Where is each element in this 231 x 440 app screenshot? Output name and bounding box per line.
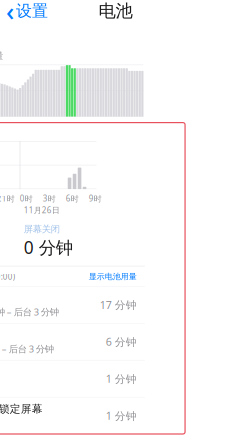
staticText: 17 分钟 <box>100 298 137 312</box>
staticText: 6时 <box>66 193 79 204</box>
staticText: 21时 <box>0 193 15 204</box>
staticText: ‹ <box>6 0 14 28</box>
staticText: 电池 <box>98 0 132 22</box>
staticText: 11月26日 <box>24 205 60 215</box>
staticText: 3时 <box>43 193 56 204</box>
staticText: App 活动 (23:00–00:00) <box>0 271 15 282</box>
staticText: 屏幕关闭 <box>24 223 60 235</box>
staticText: 电池电量 <box>0 50 3 62</box>
staticText: 6 分钟 <box>106 335 137 349</box>
staticText: 0 分钟 <box>24 236 73 259</box>
button[interactable]: 主屏幕与锁定屏幕 <box>0 397 145 434</box>
staticText: 0时 <box>20 193 33 204</box>
staticText: 1 分钟 <box>106 372 137 386</box>
staticText: 设置 <box>16 1 48 21</box>
staticText: 显示电池用量 <box>89 272 137 281</box>
staticText: 1 分钟 <box>106 409 137 423</box>
staticText: 9时 <box>89 193 102 204</box>
staticText: 主屏幕与锁定屏幕 <box>0 402 43 416</box>
button[interactable]: 显示电池用量 <box>89 272 137 281</box>
button[interactable]: 微信 <box>0 323 145 360</box>
button[interactable]: 贴 <box>0 286 145 323</box>
button[interactable]: 照片 <box>0 360 145 397</box>
button[interactable]: ‹ <box>0 0 54 32</box>
staticText: 前台 3 分钟 – 后台 3 分钟 <box>0 343 54 355</box>
staticText: 前台 14 分钟 – 后台 3 分钟 <box>0 306 59 318</box>
